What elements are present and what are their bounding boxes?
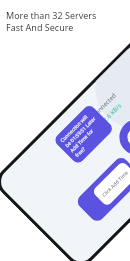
- staticText: Connected: [91, 91, 118, 119]
- staticText: More than 32 Servers: [6, 9, 97, 21]
- staticText: Fast And Secure: [6, 21, 74, 33]
- staticText: Click Add Time: [101, 169, 130, 199]
- staticText: 2.6 KB/s: [101, 102, 123, 124]
- staticText: Connection will be 01:59:51 Later Add Ti…: [59, 109, 108, 159]
